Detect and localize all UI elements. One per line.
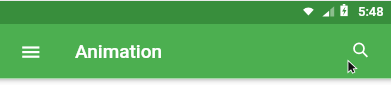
staticText: Animation xyxy=(75,40,163,62)
button[interactable]: Open navigation drawer xyxy=(8,30,52,72)
button[interactable]: Search xyxy=(340,30,382,72)
staticText: 5:48 xyxy=(358,4,384,19)
button[interactable]: Animation xyxy=(75,24,163,78)
